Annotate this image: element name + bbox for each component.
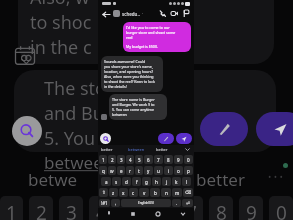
button[interactable]: 7 — [154, 155, 163, 164]
button[interactable]: !#1 — [99, 199, 110, 207]
button[interactable]: Voice input — [104, 209, 114, 219]
button[interactable]: ⇧ — [99, 188, 108, 197]
staticText: w — [110, 168, 114, 174]
button[interactable]: ⌫ — [183, 188, 193, 197]
staticText: betwe — [28, 168, 78, 191]
staticText: 6 — [147, 157, 150, 163]
button[interactable]: Expand — [184, 146, 191, 153]
staticText: k — [175, 179, 178, 185]
staticText: My budget is $500. — [126, 44, 158, 49]
button[interactable]: f — [132, 177, 141, 186]
button[interactable]: Video call — [170, 9, 179, 18]
button[interactable]: 5 — [135, 155, 143, 164]
staticText: 2 — [36, 200, 47, 220]
button[interactable]: Flag — [182, 9, 191, 18]
staticText: 4 — [96, 200, 107, 220]
button[interactable]: w — [108, 166, 116, 175]
button[interactable]: better — [156, 147, 184, 152]
staticText: 0 — [276, 200, 287, 220]
button[interactable]: l — [182, 177, 191, 186]
button[interactable]: t — [135, 166, 143, 175]
button[interactable]: u — [154, 166, 163, 175]
button[interactable]: Search — [100, 133, 111, 144]
button[interactable]: y — [144, 166, 153, 175]
staticText: , — [115, 200, 117, 206]
staticText: n — [165, 190, 168, 196]
staticText: ⇧ — [102, 190, 106, 195]
button[interactable]: 2 — [108, 155, 116, 164]
staticText: 4 — [129, 157, 132, 163]
staticText: q — [102, 168, 105, 174]
staticText: z — [112, 190, 115, 196]
button[interactable]: . — [172, 199, 181, 207]
button[interactable]: o — [174, 166, 183, 175]
staticText: betweer — [44, 151, 110, 174]
button[interactable]: 8 — [164, 155, 173, 164]
button[interactable]: ⏎ — [182, 199, 193, 207]
staticText: a — [105, 179, 108, 185]
button[interactable]: p — [184, 166, 193, 175]
button[interactable]: s — [112, 177, 121, 186]
staticText: 3 — [66, 200, 77, 220]
button[interactable]: g — [142, 177, 151, 186]
button[interactable]: m — [172, 188, 182, 197]
button[interactable]: Recents — [128, 209, 138, 219]
staticText: 0 — [187, 157, 190, 163]
staticText: 8 — [216, 200, 227, 220]
button[interactable]: c — [129, 188, 138, 197]
button[interactable]: e — [117, 166, 125, 175]
staticText: I'd like you to come to our burger store… — [126, 25, 176, 40]
button[interactable]: n — [161, 188, 171, 197]
button[interactable]: r — [126, 166, 134, 175]
staticText: 7 — [186, 200, 197, 220]
button[interactable]: q — [99, 166, 107, 175]
button[interactable]: x — [119, 188, 128, 197]
staticText: t — [138, 168, 140, 174]
staticText: 8 — [167, 157, 170, 163]
button[interactable]: k — [172, 177, 181, 186]
button[interactable]: z — [109, 188, 118, 197]
button[interactable]: 3 — [117, 155, 125, 164]
button[interactable]: b — [150, 188, 160, 197]
staticText: l — [186, 179, 188, 185]
button[interactable]: i — [164, 166, 173, 175]
button[interactable]: j — [162, 177, 171, 186]
button[interactable]: between — [128, 147, 156, 152]
button[interactable]: Back — [101, 9, 111, 19]
button[interactable]: h — [152, 177, 161, 186]
staticText: The stoi — [44, 76, 111, 101]
button[interactable]: 0 — [184, 155, 193, 164]
staticText: y — [147, 168, 150, 174]
button[interactable]: Rewrite — [158, 133, 174, 144]
staticText: x — [122, 190, 125, 196]
staticText: 2 — [111, 157, 114, 163]
button[interactable]: English(US) — [121, 199, 171, 207]
staticText: 5 — [138, 157, 141, 163]
staticText: i — [168, 168, 170, 174]
staticText: ⏎ — [186, 201, 190, 206]
staticText: p — [187, 168, 190, 174]
staticText: 1 — [6, 200, 17, 220]
button[interactable]: d — [122, 177, 131, 186]
button[interactable]: v — [139, 188, 149, 197]
staticText: and Bur — [44, 101, 112, 126]
button[interactable]: 6 — [144, 155, 153, 164]
staticText: j — [166, 179, 168, 185]
staticText: 6 — [156, 200, 167, 220]
staticText: 1 — [102, 157, 105, 163]
staticText: 5 — [126, 200, 137, 220]
staticText: b — [154, 190, 157, 196]
staticText: • • • — [268, 170, 283, 182]
button[interactable]: better — [101, 147, 128, 152]
button[interactable]: , — [111, 199, 120, 207]
staticText: better — [196, 168, 245, 191]
button[interactable]: a — [101, 177, 111, 186]
button[interactable]: Hide keyboard — [178, 209, 188, 219]
button[interactable]: Call — [158, 9, 167, 18]
button[interactable]: Home — [153, 209, 163, 219]
button[interactable]: 1 — [99, 155, 107, 164]
button[interactable]: 9 — [174, 155, 183, 164]
button[interactable]: Send — [176, 133, 192, 144]
button[interactable]: 4 — [126, 155, 134, 164]
staticText: c — [132, 190, 135, 196]
